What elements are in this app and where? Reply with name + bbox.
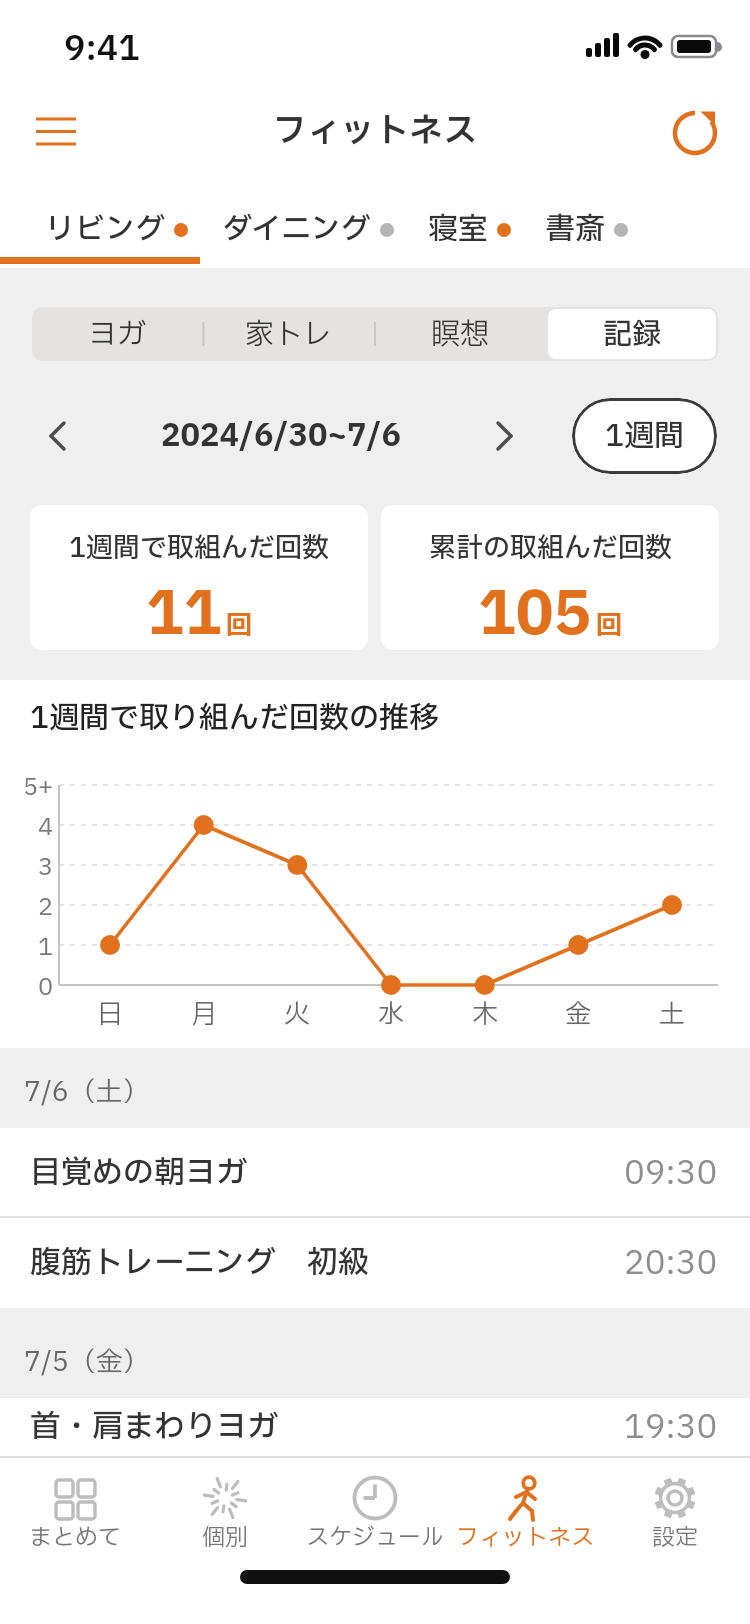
- staticText: 4: [38, 810, 54, 840]
- staticText: 1週間で取り組んだ回数の推移: [30, 696, 439, 741]
- staticText: 回: [596, 606, 623, 645]
- button[interactable]: [30, 398, 86, 474]
- staticText: 5+: [23, 770, 54, 800]
- button[interactable]: [667, 105, 723, 161]
- staticText: ダイニング: [222, 207, 371, 252]
- staticText: 家トレ: [245, 313, 333, 356]
- staticText: 首・肩まわりヨガ: [30, 1404, 278, 1450]
- staticText: 回: [226, 606, 253, 645]
- staticText: 設定: [652, 1521, 698, 1555]
- staticText: フィットネス: [273, 106, 477, 157]
- staticText: 土: [659, 995, 686, 1023]
- staticText: 3: [38, 850, 54, 880]
- staticText: 9:41: [64, 24, 140, 75]
- button[interactable]: ヨガ: [32, 307, 203, 361]
- button[interactable]: 瞑想: [374, 307, 546, 361]
- staticText: スケジュール: [306, 1521, 444, 1555]
- staticText: 7/6（土）: [24, 1072, 150, 1112]
- staticText: 記録: [603, 313, 662, 356]
- button[interactable]: [28, 112, 84, 150]
- staticText: まとめて: [29, 1521, 121, 1555]
- staticText: 0: [38, 970, 54, 1000]
- button[interactable]: スケジュール: [300, 1458, 450, 1568]
- staticText: 火: [284, 995, 311, 1023]
- button[interactable]: 個別: [150, 1458, 300, 1568]
- staticText: 水: [378, 995, 405, 1023]
- staticText: 書斎: [545, 207, 605, 252]
- button[interactable]: 腹筋トレーニング 初級: [0, 1218, 750, 1308]
- button[interactable]: 目覚めの朝ヨガ: [0, 1128, 750, 1218]
- staticText: 月: [191, 995, 218, 1023]
- button[interactable]: 寝室: [428, 207, 511, 252]
- staticText: 7/5（金）: [24, 1342, 150, 1382]
- staticText: 目覚めの朝ヨガ: [30, 1150, 247, 1196]
- staticText: 2: [38, 890, 54, 920]
- button[interactable]: 1週間: [572, 398, 717, 474]
- staticText: 累計の取組んだ回数: [429, 528, 672, 568]
- staticText: 105: [478, 570, 592, 650]
- staticText: 11: [146, 570, 222, 650]
- button[interactable]: 記録: [546, 307, 718, 361]
- staticText: 腹筋トレーニング 初級: [30, 1240, 369, 1286]
- button[interactable]: ダイニング: [222, 207, 394, 252]
- staticText: フィットネス: [456, 1521, 594, 1555]
- button[interactable]: 設定: [600, 1458, 750, 1568]
- staticText: 2024/6/30~7/6: [161, 413, 402, 459]
- staticText: 1週間: [605, 414, 684, 459]
- staticText: ヨガ: [88, 313, 147, 356]
- staticText: 木: [472, 995, 499, 1023]
- button[interactable]: まとめて: [0, 1458, 150, 1568]
- button[interactable]: フィットネス: [450, 1458, 600, 1568]
- staticText: 個別: [202, 1521, 248, 1555]
- staticText: 09:30: [624, 1149, 718, 1198]
- staticText: 金: [565, 995, 592, 1023]
- staticText: 瞑想: [431, 313, 490, 356]
- staticText: 日: [97, 995, 124, 1023]
- button[interactable]: 首・肩まわりヨガ: [0, 1398, 750, 1456]
- button[interactable]: 書斎: [545, 207, 628, 252]
- staticText: 1週間で取組んだ回数: [69, 528, 330, 568]
- staticText: 20:30: [624, 1239, 718, 1288]
- staticText: 1: [38, 930, 54, 960]
- staticText: 19:30: [624, 1403, 718, 1452]
- button[interactable]: [478, 398, 534, 474]
- staticText: 寝室: [428, 207, 488, 252]
- button[interactable]: リビング: [45, 207, 188, 252]
- staticText: リビング: [45, 207, 165, 252]
- button[interactable]: 家トレ: [203, 307, 374, 361]
